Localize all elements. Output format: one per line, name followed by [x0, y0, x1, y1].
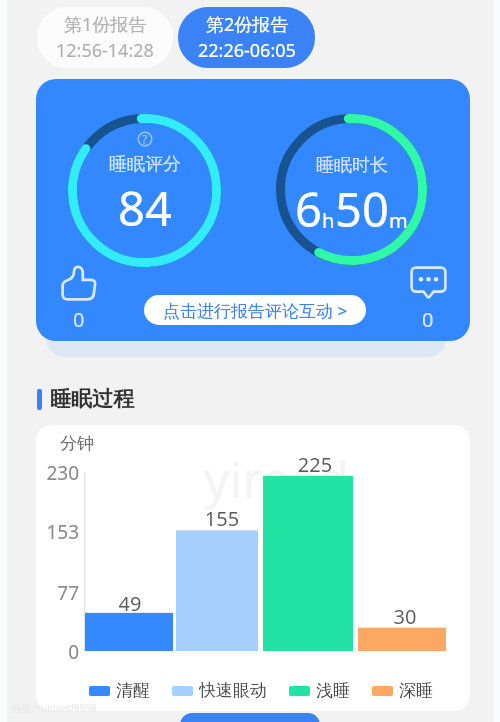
staticText: 深睡 — [399, 680, 433, 701]
staticText: 0 — [73, 306, 85, 333]
staticText: 点击进行报告评论互动 > — [163, 299, 348, 322]
button[interactable]: Like — [57, 265, 100, 333]
button[interactable]: 点击进行报告评论互动 > — [144, 295, 366, 325]
staticText: 49 — [105, 590, 155, 617]
staticText: 6 — [295, 177, 322, 241]
staticText: 155 — [197, 505, 247, 532]
staticText: @用户upload9898 — [12, 701, 97, 715]
staticText: 12:56-14:28 — [56, 38, 154, 63]
button[interactable]: Help — [137, 131, 153, 147]
staticText: 84 — [118, 176, 172, 240]
staticText: 睡眠时长 — [316, 154, 388, 177]
staticText: 0 — [39, 639, 79, 665]
staticText: 快速眼动 — [199, 680, 267, 701]
button[interactable]: 第2份报告 — [178, 7, 315, 68]
staticText: 30 — [380, 603, 430, 630]
staticText: 第2份报告 — [206, 12, 289, 37]
staticText: 睡眠评分 — [109, 153, 181, 176]
staticText: ? — [142, 131, 148, 147]
staticText: 睡眠过程 — [50, 386, 134, 412]
staticText: 22:26-06:05 — [198, 38, 296, 63]
staticText: 浅睡 — [316, 680, 350, 701]
staticText: 153 — [39, 519, 79, 545]
staticText: 第1份报告 — [64, 12, 147, 37]
staticText: 77 — [39, 580, 79, 606]
staticText: h — [322, 207, 335, 234]
button[interactable]: 第1份报告 — [37, 7, 173, 68]
staticText: 225 — [290, 451, 340, 478]
staticText: 清醒 — [116, 680, 150, 701]
button[interactable]: Comment — [408, 266, 448, 333]
button[interactable]: Next — [180, 713, 320, 722]
staticText: 分钟 — [60, 433, 94, 454]
staticText: 50 — [335, 177, 389, 241]
staticText: 230 — [39, 460, 79, 486]
staticText: yiread — [204, 445, 350, 513]
staticText: m — [389, 207, 408, 234]
staticText: 0 — [422, 306, 434, 333]
